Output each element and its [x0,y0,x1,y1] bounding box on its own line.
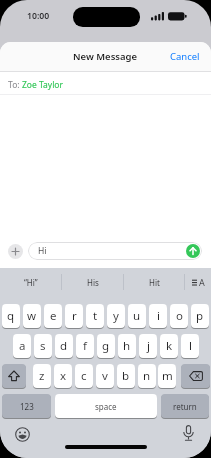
staticText: His [87,277,99,288]
button[interactable] [179,424,197,442]
staticText: e [50,308,57,324]
button[interactable]: v [96,364,114,388]
button[interactable] [8,244,23,259]
staticText: Hi [38,245,47,257]
button[interactable] [14,426,31,443]
button[interactable] [2,364,26,388]
staticText: b [122,368,130,384]
staticText: l [189,338,192,354]
button[interactable]: g [97,334,115,358]
button[interactable]: space [55,394,157,418]
staticText: m [162,368,173,384]
button[interactable]: return [161,394,209,418]
button[interactable]: u [128,304,146,328]
staticText: a [19,338,26,354]
button[interactable]: Hi [28,242,202,260]
button[interactable]: Cancel [181,50,211,63]
staticText: u [133,308,141,324]
button[interactable]: y [107,304,125,328]
staticText: n [143,368,151,384]
button[interactable]: a [13,334,31,358]
button[interactable] [186,244,200,258]
staticText: v [102,368,108,384]
button[interactable]: f [76,334,94,358]
button[interactable]: His [62,268,124,296]
button[interactable]: k [160,334,178,358]
staticText: Hit [149,277,160,288]
button[interactable]: c [75,364,93,388]
staticText: t [93,308,98,324]
staticText: o [176,308,183,324]
button[interactable]: To: [8,79,64,91]
staticText: A [199,276,205,288]
staticText: p [196,308,204,324]
button[interactable]: j [139,334,157,358]
staticText: 123 [20,401,34,412]
button[interactable]: n [138,364,156,388]
button[interactable]: o [170,304,188,328]
staticText: f [83,338,87,354]
staticText: Cancel [170,50,200,63]
staticText: return [173,401,197,412]
staticText: c [81,368,87,384]
staticText: i [157,308,160,324]
button[interactable]: 123 [2,394,51,418]
button[interactable]: d [55,334,73,358]
staticText: s [40,338,46,354]
staticText: 10:00 [27,10,50,22]
button[interactable]: “Hi” [0,268,62,296]
button[interactable]: b [117,364,135,388]
staticText: z [39,368,45,384]
staticText: space [95,401,117,412]
button[interactable]: z [33,364,51,388]
button[interactable]: h [118,334,136,358]
button[interactable]: s [34,334,52,358]
button[interactable]: i [149,304,167,328]
button[interactable]: p [191,304,209,328]
button[interactable]: e [44,304,62,328]
staticText: k [166,338,173,354]
button[interactable]: A [185,268,211,296]
button[interactable]: w [23,304,41,328]
button[interactable]: Hit [123,268,185,296]
staticText: New Message [73,50,138,63]
button[interactable]: r [65,304,83,328]
staticText: Zoe Taylor [22,79,64,91]
button[interactable]: q [2,304,20,328]
staticText: y [113,308,119,324]
staticText: q [7,308,15,324]
button[interactable] [181,364,210,388]
staticText: j [147,338,150,354]
staticText: g [102,338,110,354]
button[interactable]: t [86,304,104,328]
staticText: “Hi” [24,277,38,288]
button[interactable]: m [158,364,176,388]
button[interactable]: l [181,334,199,358]
staticText: h [123,338,131,354]
staticText: To: [8,79,22,91]
staticText: r [72,308,77,324]
staticText: x [60,368,67,384]
staticText: d [60,338,68,354]
button[interactable]: x [54,364,72,388]
staticText: w [27,308,37,324]
